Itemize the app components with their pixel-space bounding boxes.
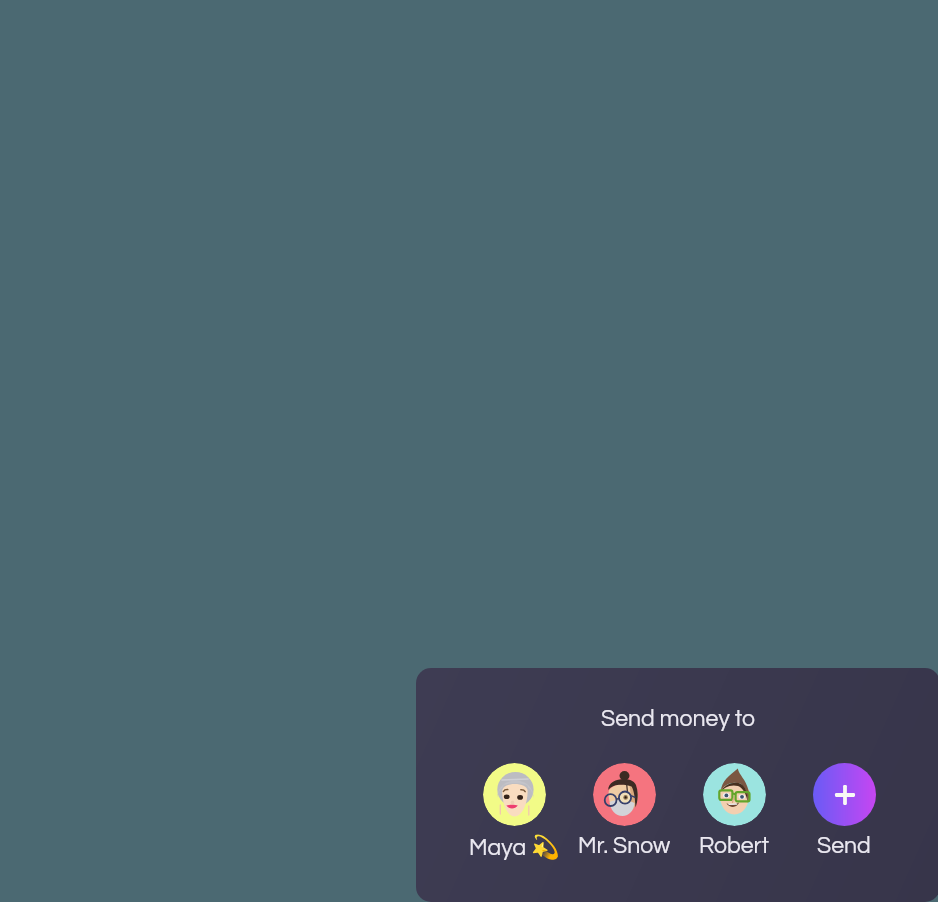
button[interactable]: Mr. Snow <box>593 763 656 826</box>
button[interactable]: Maya <box>459 763 569 861</box>
button[interactable]: Send money to a new contact <box>813 763 876 826</box>
staticText: Maya 💫 <box>469 834 560 861</box>
staticText: Send money to <box>416 707 938 731</box>
button[interactable]: Maya <box>483 763 546 826</box>
button[interactable]: Mr. Snow <box>569 763 679 858</box>
button[interactable]: Send money to a new contact <box>789 763 899 858</box>
staticText: Mr. Snow <box>578 834 671 858</box>
staticText: Send <box>817 834 871 858</box>
staticText: Robert <box>699 834 770 858</box>
button[interactable]: Robert <box>679 763 789 858</box>
button[interactable]: Robert <box>703 763 766 826</box>
